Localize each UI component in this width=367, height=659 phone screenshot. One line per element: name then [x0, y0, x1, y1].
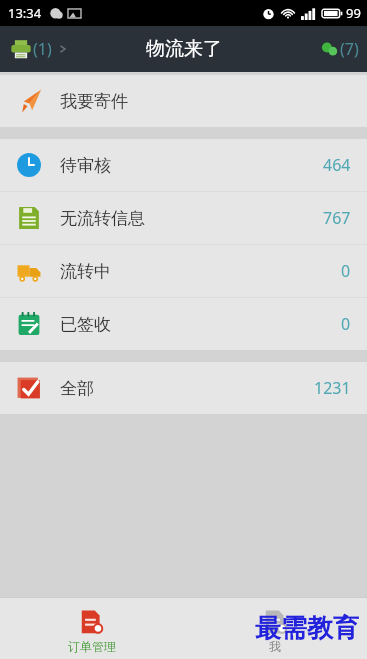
staticText: 464 — [323, 154, 351, 176]
button[interactable]: (1) — [0, 32, 76, 66]
staticText: (1) — [33, 38, 52, 60]
button[interactable]: 订单管理 — [0, 597, 183, 659]
staticText: 最需教育 — [255, 612, 359, 645]
staticText: 无流转信息 — [60, 208, 145, 229]
staticText: 流转中 — [60, 261, 111, 282]
staticText: 物流来了 — [146, 37, 222, 61]
staticText: 1231 — [314, 377, 351, 399]
button[interactable]: 无流转信息 — [0, 192, 367, 244]
staticText: 待审核 — [60, 155, 111, 176]
staticText: 我 — [269, 639, 281, 654]
button[interactable]: (7) — [313, 32, 367, 66]
staticText: 我要寄件 — [60, 91, 128, 112]
button[interactable]: 我要寄件 — [0, 75, 367, 127]
button[interactable]: 已签收 — [0, 298, 367, 350]
staticText: 全部 — [60, 378, 94, 399]
staticText: 13:34 — [8, 4, 42, 22]
staticText: (7) — [340, 38, 359, 60]
staticText: 0 — [341, 313, 351, 335]
button[interactable]: 全部 — [0, 362, 367, 414]
staticText: 767 — [323, 207, 351, 229]
staticText: 99 — [346, 4, 361, 22]
staticText: 已签收 — [60, 314, 111, 335]
button[interactable]: 待审核 — [0, 139, 367, 191]
staticText: 0 — [341, 260, 351, 282]
staticText: 订单管理 — [68, 639, 116, 654]
button[interactable]: 我 — [183, 597, 367, 659]
button[interactable]: 流转中 — [0, 245, 367, 297]
